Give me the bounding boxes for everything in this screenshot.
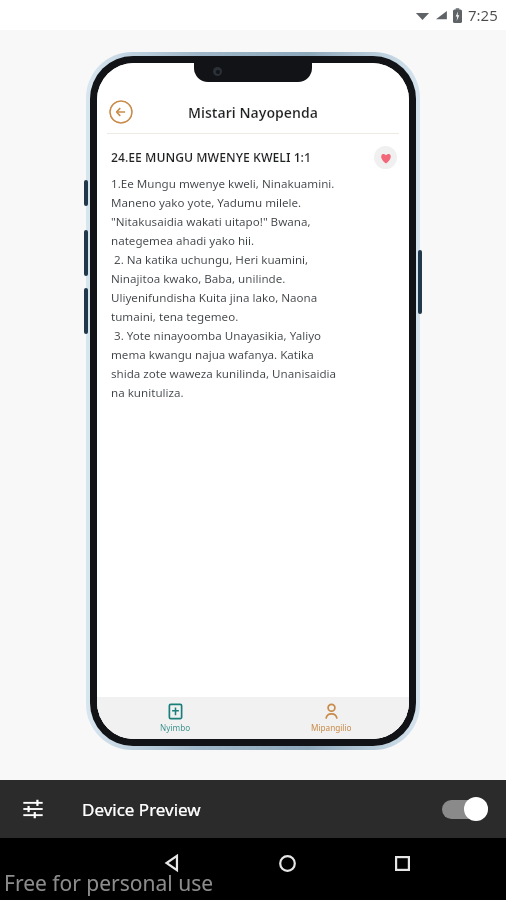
- staticText: Device Preview: [82, 798, 201, 821]
- staticText: Mistari Nayopenda: [188, 103, 318, 122]
- button[interactable]: Settings: [18, 794, 48, 824]
- staticText: 2. Na katika uchungu, Heri kuamini,: [111, 252, 309, 268]
- staticText: Nyimbo: [160, 722, 191, 733]
- staticText: tumaini, tena tegemeo.: [111, 309, 239, 325]
- button[interactable]: Mipangilio: [253, 700, 409, 736]
- staticText: 7:25: [468, 5, 498, 25]
- button[interactable]: Back: [109, 100, 133, 124]
- staticText: "Nitakusaidia wakati uitapo!" Bwana,: [111, 214, 311, 230]
- staticText: 1.Ee Mungu mwenye kweli, Ninakuamini.: [111, 176, 335, 192]
- button[interactable]: Home: [230, 838, 345, 900]
- button[interactable]: Favourite: [374, 146, 397, 169]
- staticText: Free for personal use: [4, 869, 214, 898]
- staticText: Uliyenifundisha Kuita jina lako, Naona: [111, 290, 318, 306]
- staticText: na kunituliza.: [111, 385, 184, 401]
- staticText: mema kwangu najua wafanya. Katika: [111, 347, 314, 363]
- button[interactable]: Toggle device preview: [442, 796, 488, 822]
- staticText: Ninajitoa kwako, Baba, unilinde.: [111, 271, 286, 287]
- staticText: 24.EE MUNGU MWENYE KWELI 1:1: [111, 149, 374, 166]
- staticText: Maneno yako yote, Yadumu milele.: [111, 195, 302, 211]
- staticText: 3. Yote ninayoomba Unayasikia, Yaliyo: [111, 328, 322, 344]
- staticText: nategemea ahadi yako hii.: [111, 233, 255, 249]
- staticText: shida zote waweza kunilinda, Unanisaidia: [111, 366, 337, 382]
- button[interactable]: Nyimbo: [97, 700, 253, 736]
- button[interactable]: Recent apps: [345, 838, 460, 900]
- button[interactable]: Back: [115, 838, 230, 900]
- staticText: Mipangilio: [311, 722, 352, 733]
